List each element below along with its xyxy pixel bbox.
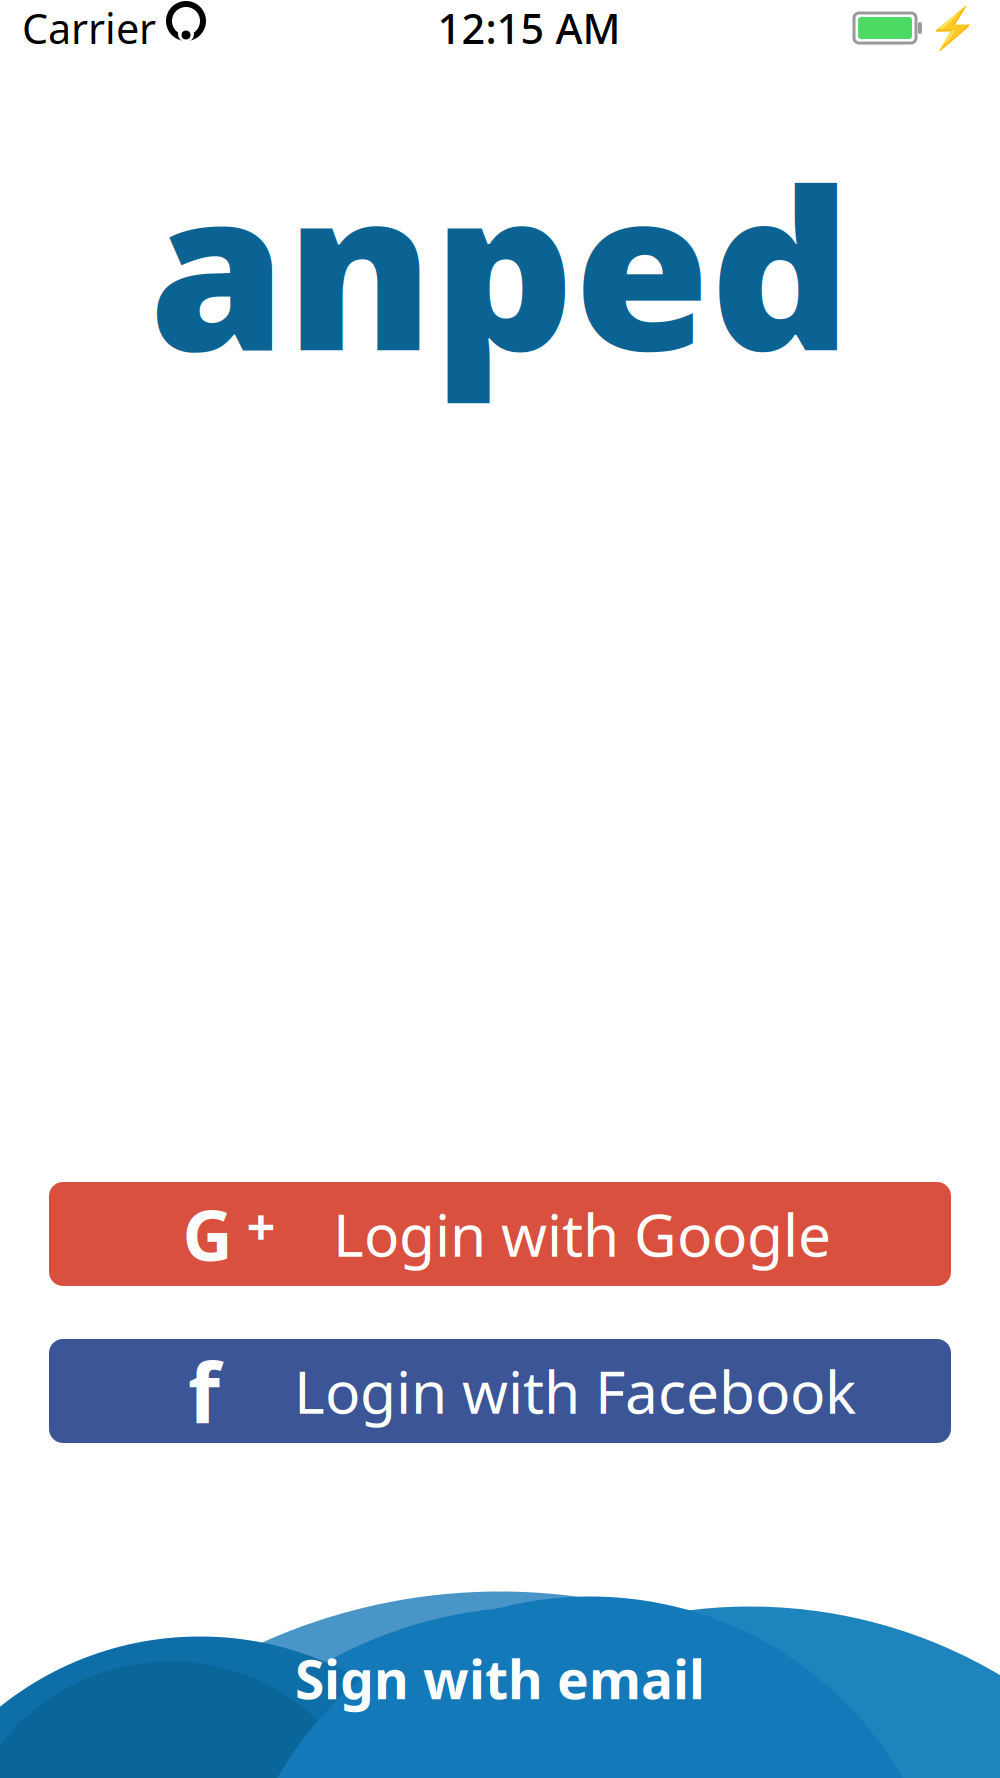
staticText: 12:15 AM bbox=[437, 1, 620, 55]
button[interactable]: G bbox=[49, 1182, 951, 1286]
staticText: ⚡ bbox=[928, 5, 978, 51]
button[interactable]: f bbox=[49, 1339, 951, 1443]
staticText: or bbox=[477, 1543, 523, 1603]
staticText: G bbox=[182, 1188, 232, 1280]
staticText: anped bbox=[149, 119, 851, 411]
button[interactable]: or bbox=[0, 1543, 1000, 1714]
staticText: f bbox=[188, 1336, 220, 1446]
staticText: + bbox=[246, 1192, 275, 1260]
staticText: Carrier bbox=[22, 1, 156, 55]
staticText: Login with Facebook bbox=[294, 1352, 856, 1430]
staticText: Sign with email bbox=[295, 1643, 705, 1714]
staticText: Login with Google bbox=[333, 1195, 831, 1273]
